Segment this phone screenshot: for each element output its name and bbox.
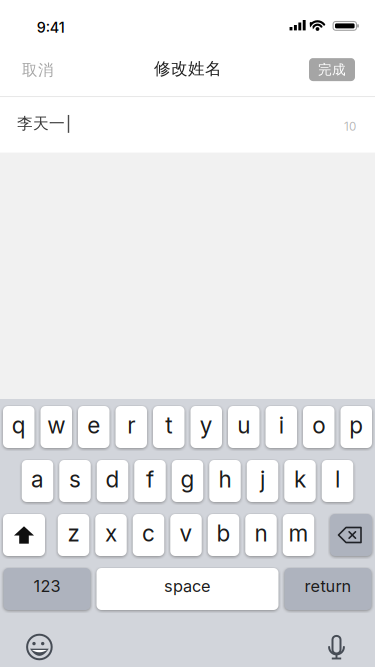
staticText: q [12,412,26,439]
button[interactable]: b [208,514,239,556]
staticText: h [218,466,231,493]
button[interactable]: n [245,514,277,556]
button[interactable]: x [95,514,127,556]
staticText: 李天一 [17,114,65,133]
staticText: v [179,520,192,547]
staticText: l [335,466,340,493]
staticText: u [237,412,250,439]
button[interactable]: k [284,460,316,502]
button[interactable]: 完成 [309,58,355,81]
button[interactable]: r [115,406,147,448]
button[interactable]: s [59,460,91,502]
button[interactable]: Emoji [25,633,53,661]
button[interactable]: return [284,568,371,610]
button[interactable]: e [78,406,109,448]
button[interactable]: w [40,406,72,448]
staticText: m [288,520,308,547]
button[interactable]: l [322,460,353,502]
staticText: 修改姓名 [154,58,222,79]
staticText: 完成 [318,61,346,78]
staticText: x [105,520,117,547]
button[interactable]: m [283,514,314,556]
button[interactable]: 取消 [22,60,54,80]
staticText: 123 [33,576,60,596]
button[interactable]: p [340,406,372,448]
button[interactable]: u [228,406,259,448]
button[interactable]: c [133,514,164,556]
staticText: s [69,466,81,493]
button[interactable]: j [247,460,278,502]
button[interactable]: g [172,460,203,502]
button[interactable]: Dictation [325,631,347,661]
staticText: y [200,412,213,439]
staticText: i [279,412,284,439]
staticText: p [349,412,363,439]
button[interactable]: y [190,406,222,448]
button[interactable]: d [97,460,128,502]
staticText: e [87,412,100,439]
button[interactable]: t [153,406,184,448]
staticText: d [105,466,119,493]
staticText: a [31,466,44,493]
button[interactable]: a [22,460,53,502]
staticText: j [260,466,265,493]
button[interactable]: 123 [3,568,90,610]
staticText: 取消 [22,60,54,80]
button[interactable]: i [265,406,297,448]
staticText: return [304,576,351,596]
staticText: o [312,412,325,439]
button[interactable]: f [134,460,166,502]
staticText: r [127,412,135,439]
staticText: 10 [344,119,356,133]
staticText: b [216,520,230,547]
button[interactable]: h [209,460,241,502]
button[interactable]: Delete [330,514,372,556]
staticText: c [142,520,155,547]
staticText: g [180,466,194,493]
button[interactable]: v [170,514,202,556]
staticText: f [146,466,154,493]
staticText: w [47,412,65,439]
staticText: n [254,520,267,547]
staticText: space [164,576,211,596]
button[interactable]: space [96,568,278,610]
button[interactable]: 姓名 [0,97,375,153]
button[interactable]: Shift [3,514,45,556]
button[interactable]: o [303,406,334,448]
staticText: t [165,412,172,439]
button[interactable]: z [58,514,89,556]
staticText: z [67,520,79,547]
staticText: 9:41 [37,19,65,36]
button[interactable]: q [3,406,34,448]
staticText: k [294,466,306,493]
